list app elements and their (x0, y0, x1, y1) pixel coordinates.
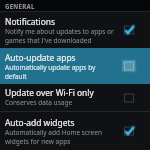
button[interactable]: Unchecked (120, 90, 138, 106)
staticText: GENERAL (5, 2, 35, 10)
button[interactable]: Auto-add widgets (0, 112, 150, 150)
staticText: Auto-add widgets (5, 117, 75, 128)
staticText: Automatically add Home screen widgets fo… (5, 128, 117, 146)
button[interactable]: Checked (120, 123, 138, 139)
button[interactable]: Notifications (0, 12, 150, 48)
staticText: Notify me about updates to apps or games… (5, 27, 117, 45)
button[interactable]: Auto-update apps (0, 48, 150, 84)
button[interactable]: Unchecked (120, 58, 138, 74)
staticText: Conserves data usage (5, 98, 73, 107)
staticText: Automatically update apps by default (5, 63, 117, 81)
staticText: Update over Wi-Fi only (5, 87, 94, 98)
button[interactable]: Checked (120, 22, 138, 38)
staticText: Auto-update apps (5, 52, 76, 63)
button[interactable]: Update over Wi-Fi only (0, 84, 150, 111)
staticText: Notifications (5, 16, 55, 27)
